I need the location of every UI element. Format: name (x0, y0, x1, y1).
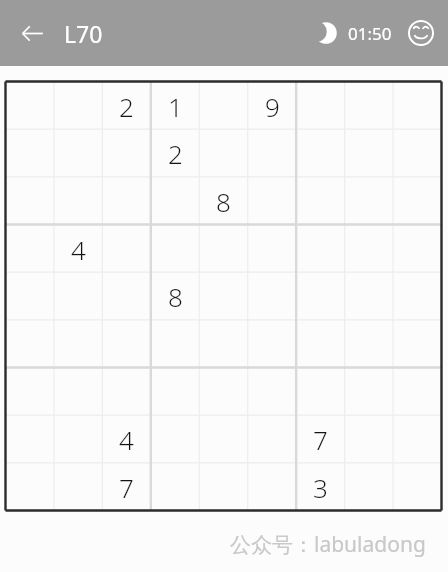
button[interactable]: 1 (151, 82, 199, 130)
button[interactable]: 4 (102, 415, 150, 463)
button[interactable]: 8 (151, 272, 199, 320)
button[interactable]: Restart game (400, 12, 442, 54)
staticText: 3 (313, 470, 328, 505)
staticText: 公众号：labuladong (230, 530, 426, 559)
button[interactable]: 01:50 (346, 22, 394, 45)
button[interactable]: Night mode (304, 12, 346, 54)
button[interactable]: Sudoku grid (0, 0, 448, 572)
button[interactable]: 2 (151, 129, 199, 177)
staticText: 8 (168, 279, 183, 314)
staticText: 7 (313, 422, 328, 457)
staticText: 9 (265, 89, 280, 124)
staticText: 1 (168, 89, 183, 124)
staticText: 01:50 (348, 22, 392, 45)
staticText: 8 (216, 184, 231, 219)
button[interactable]: 9 (248, 82, 296, 130)
button[interactable]: 4 (54, 225, 102, 273)
button[interactable]: 7 (102, 463, 150, 511)
staticText: 4 (71, 232, 86, 267)
button[interactable]: L70 (64, 18, 103, 49)
staticText: 2 (119, 89, 134, 124)
button[interactable]: 2 (102, 82, 150, 130)
staticText: 2 (168, 136, 183, 171)
button[interactable]: Back (9, 10, 55, 56)
staticText: L70 (64, 18, 103, 49)
button[interactable]: 3 (296, 463, 344, 511)
staticText: 4 (119, 422, 134, 457)
button[interactable]: 8 (199, 177, 247, 225)
button[interactable]: 7 (296, 415, 344, 463)
staticText: 7 (119, 470, 134, 505)
